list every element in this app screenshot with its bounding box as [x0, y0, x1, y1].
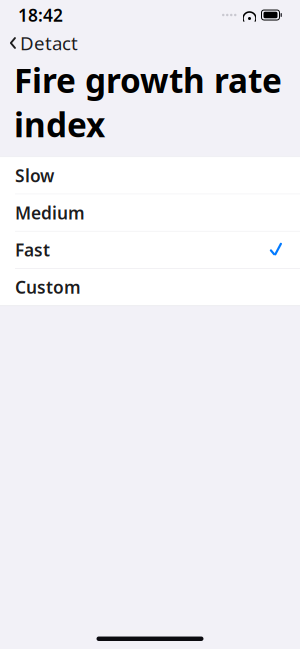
button[interactable]: Medium [0, 194, 300, 232]
staticText: Custom [15, 276, 81, 299]
staticText: 18:42 [18, 3, 63, 26]
staticText: Slow [15, 164, 54, 187]
staticText: Medium [15, 201, 85, 224]
button[interactable]: Slow [0, 157, 300, 194]
button[interactable]: Fast [0, 232, 300, 269]
button[interactable]: Custom [0, 269, 300, 306]
staticText: Fast [15, 238, 50, 261]
staticText: Fire growth rate index [14, 58, 282, 146]
staticText: Detact [20, 31, 78, 55]
button[interactable]: Detact [0, 26, 88, 60]
